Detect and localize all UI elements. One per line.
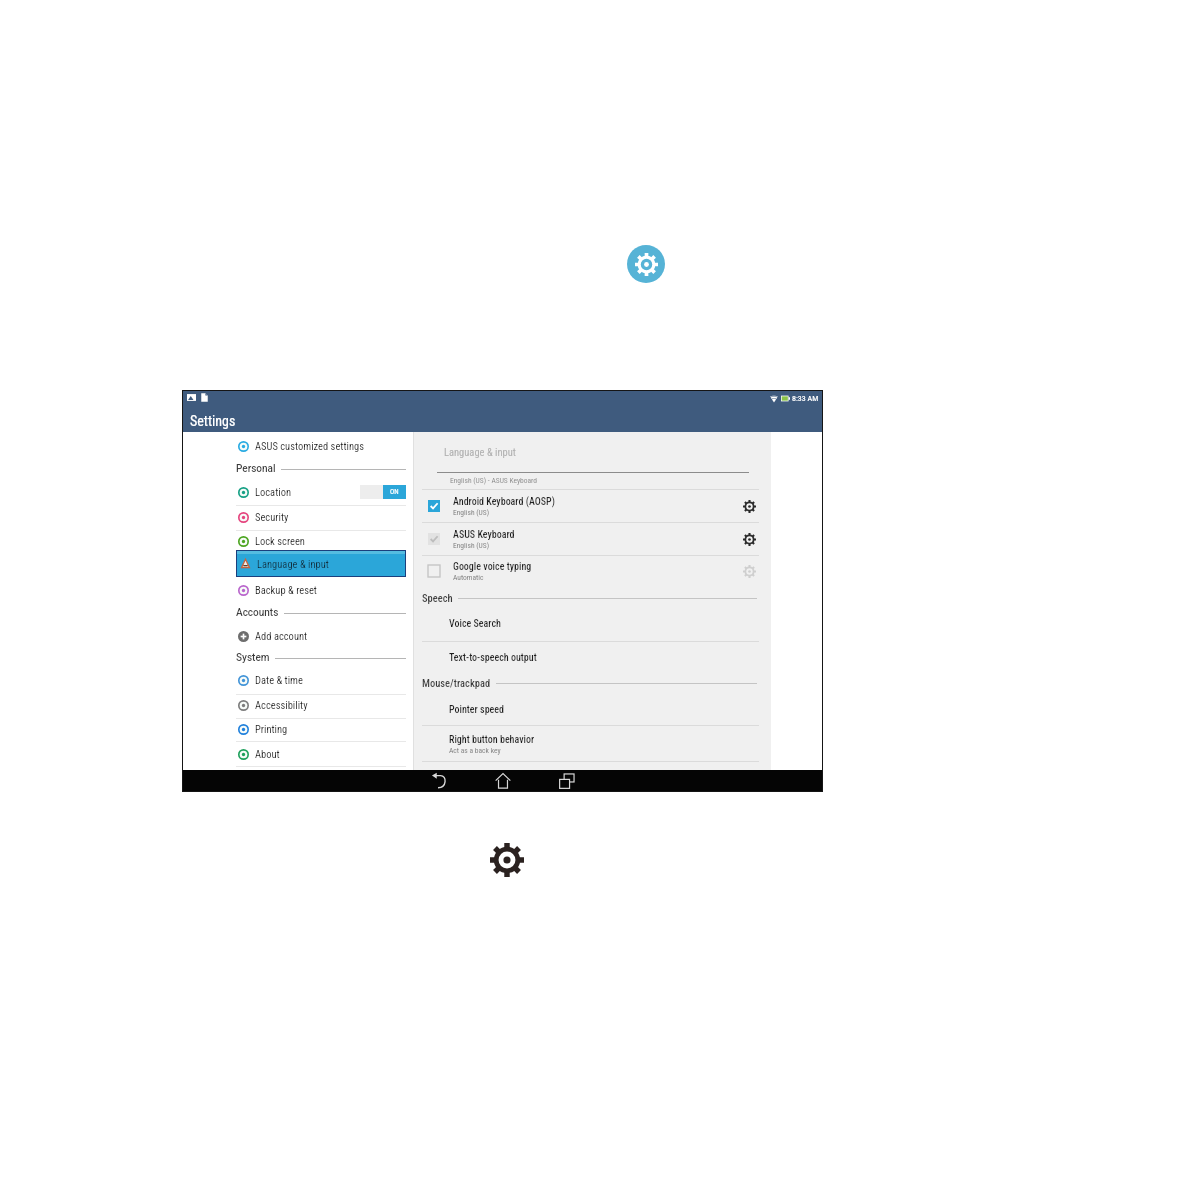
button[interactable]: Settings — [737, 494, 761, 518]
staticText: Accounts — [236, 607, 279, 619]
button[interactable]: Text-to-speech output — [414, 644, 771, 672]
staticText: Personal — [236, 463, 276, 475]
button[interactable]: ASUS Keyboard — [414, 523, 771, 555]
staticText: Date & time — [255, 674, 303, 686]
button[interactable]: Settings — [490, 843, 524, 877]
button[interactable]: Security — [236, 505, 406, 529]
staticText: Voice Search — [449, 618, 501, 630]
staticText: ASUS Keyboard — [453, 529, 515, 541]
staticText: About — [255, 748, 280, 760]
staticText: Android Keyboard (AOSP) — [453, 496, 555, 508]
staticText: Act as a back key — [449, 746, 501, 755]
staticText: Text-to-speech output — [449, 652, 537, 664]
staticText: 8:33 AM — [792, 394, 819, 403]
button[interactable]: Google voice typing — [414, 555, 771, 587]
button[interactable]: Date & time — [236, 668, 406, 692]
button[interactable]: Printing — [236, 717, 406, 741]
button[interactable]: Add account — [236, 624, 406, 648]
button[interactable]: Lock screen — [236, 529, 406, 553]
staticText: English (US) — [453, 508, 490, 517]
staticText: Location — [255, 486, 292, 498]
staticText: Printing — [255, 723, 288, 735]
staticText: Speech — [422, 592, 453, 604]
button[interactable]: ASUS customized settings — [236, 434, 406, 458]
button[interactable]: Settings — [627, 245, 665, 283]
staticText: Language & input — [257, 558, 329, 570]
button[interactable]: About — [236, 742, 406, 766]
staticText: Backup & reset — [255, 584, 317, 596]
staticText: Accessibility — [255, 699, 308, 711]
staticText: System — [236, 652, 270, 664]
staticText: English (US) - ASUS Keyboard — [450, 476, 538, 485]
staticText: English (US) — [453, 541, 490, 550]
button[interactable]: Location — [236, 480, 406, 504]
staticText: Settings — [190, 413, 236, 429]
staticText: Pointer speed — [449, 704, 505, 716]
staticText: Automatic — [453, 573, 484, 582]
button[interactable]: Voice Search — [414, 610, 771, 638]
staticText: Security — [255, 511, 289, 523]
button[interactable]: Settings — [737, 559, 761, 583]
staticText: Mouse/trackpad — [422, 677, 491, 689]
staticText: Language & input — [444, 446, 516, 458]
button[interactable]: Right button behavior — [414, 730, 771, 758]
staticText: Google voice typing — [453, 561, 532, 573]
button[interactable]: Recents — [535, 770, 599, 791]
button[interactable]: Back — [407, 770, 471, 791]
staticText: Lock screen — [255, 535, 305, 547]
staticText: ON — [390, 488, 399, 496]
staticText: ASUS customized settings — [255, 440, 365, 452]
button[interactable]: Home — [471, 770, 535, 791]
button[interactable]: Android Keyboard (AOSP) — [414, 490, 771, 522]
button[interactable]: Pointer speed — [414, 696, 771, 724]
button[interactable]: Backup & reset — [236, 578, 406, 602]
button[interactable]: Accessibility — [236, 693, 406, 717]
staticText: Add account — [255, 630, 308, 642]
staticText: Right button behavior — [449, 734, 535, 746]
button[interactable]: Settings — [737, 527, 761, 551]
button[interactable]: Language & input — [236, 550, 406, 577]
